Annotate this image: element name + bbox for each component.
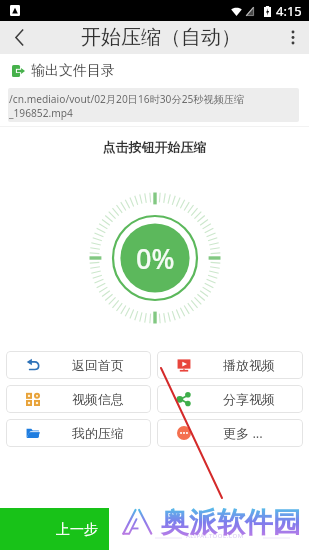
staticText: 播放视频: [223, 357, 275, 373]
staticText: 返回首页: [72, 357, 124, 373]
button[interactable]: More options: [277, 21, 309, 54]
button[interactable]: 播放视频: [157, 351, 303, 379]
staticText: 奥派软件园: [161, 505, 301, 540]
button[interactable]: 视频信息: [6, 385, 151, 413]
staticText: 点击按钮开始压缩: [0, 139, 309, 155]
button[interactable]: 返回首页: [6, 351, 151, 379]
staticText: 我的压缩: [72, 425, 124, 441]
staticText: 上一步: [56, 521, 98, 539]
button[interactable]: 我的压缩: [6, 419, 151, 447]
staticText: 输出文件目录: [31, 62, 115, 80]
staticText: 开始压缩（自动）: [81, 25, 241, 50]
staticText: 0%: [136, 240, 175, 277]
staticText: 分享视频: [223, 391, 275, 407]
button[interactable]: 更多 ...: [157, 419, 303, 447]
staticText: 更多 ...: [223, 424, 263, 442]
staticText: ALIPAI.TOOL.COM: [186, 532, 244, 540]
button[interactable]: Back: [0, 21, 38, 54]
staticText: /cn.mediaio/vout/02月20日16时30分25秒视频压缩_196…: [9, 92, 296, 120]
button[interactable]: 上一步: [0, 508, 109, 550]
button[interactable]: 分享视频: [157, 385, 303, 413]
staticText: 4:15: [276, 2, 302, 20]
staticText: 视频信息: [72, 391, 124, 407]
